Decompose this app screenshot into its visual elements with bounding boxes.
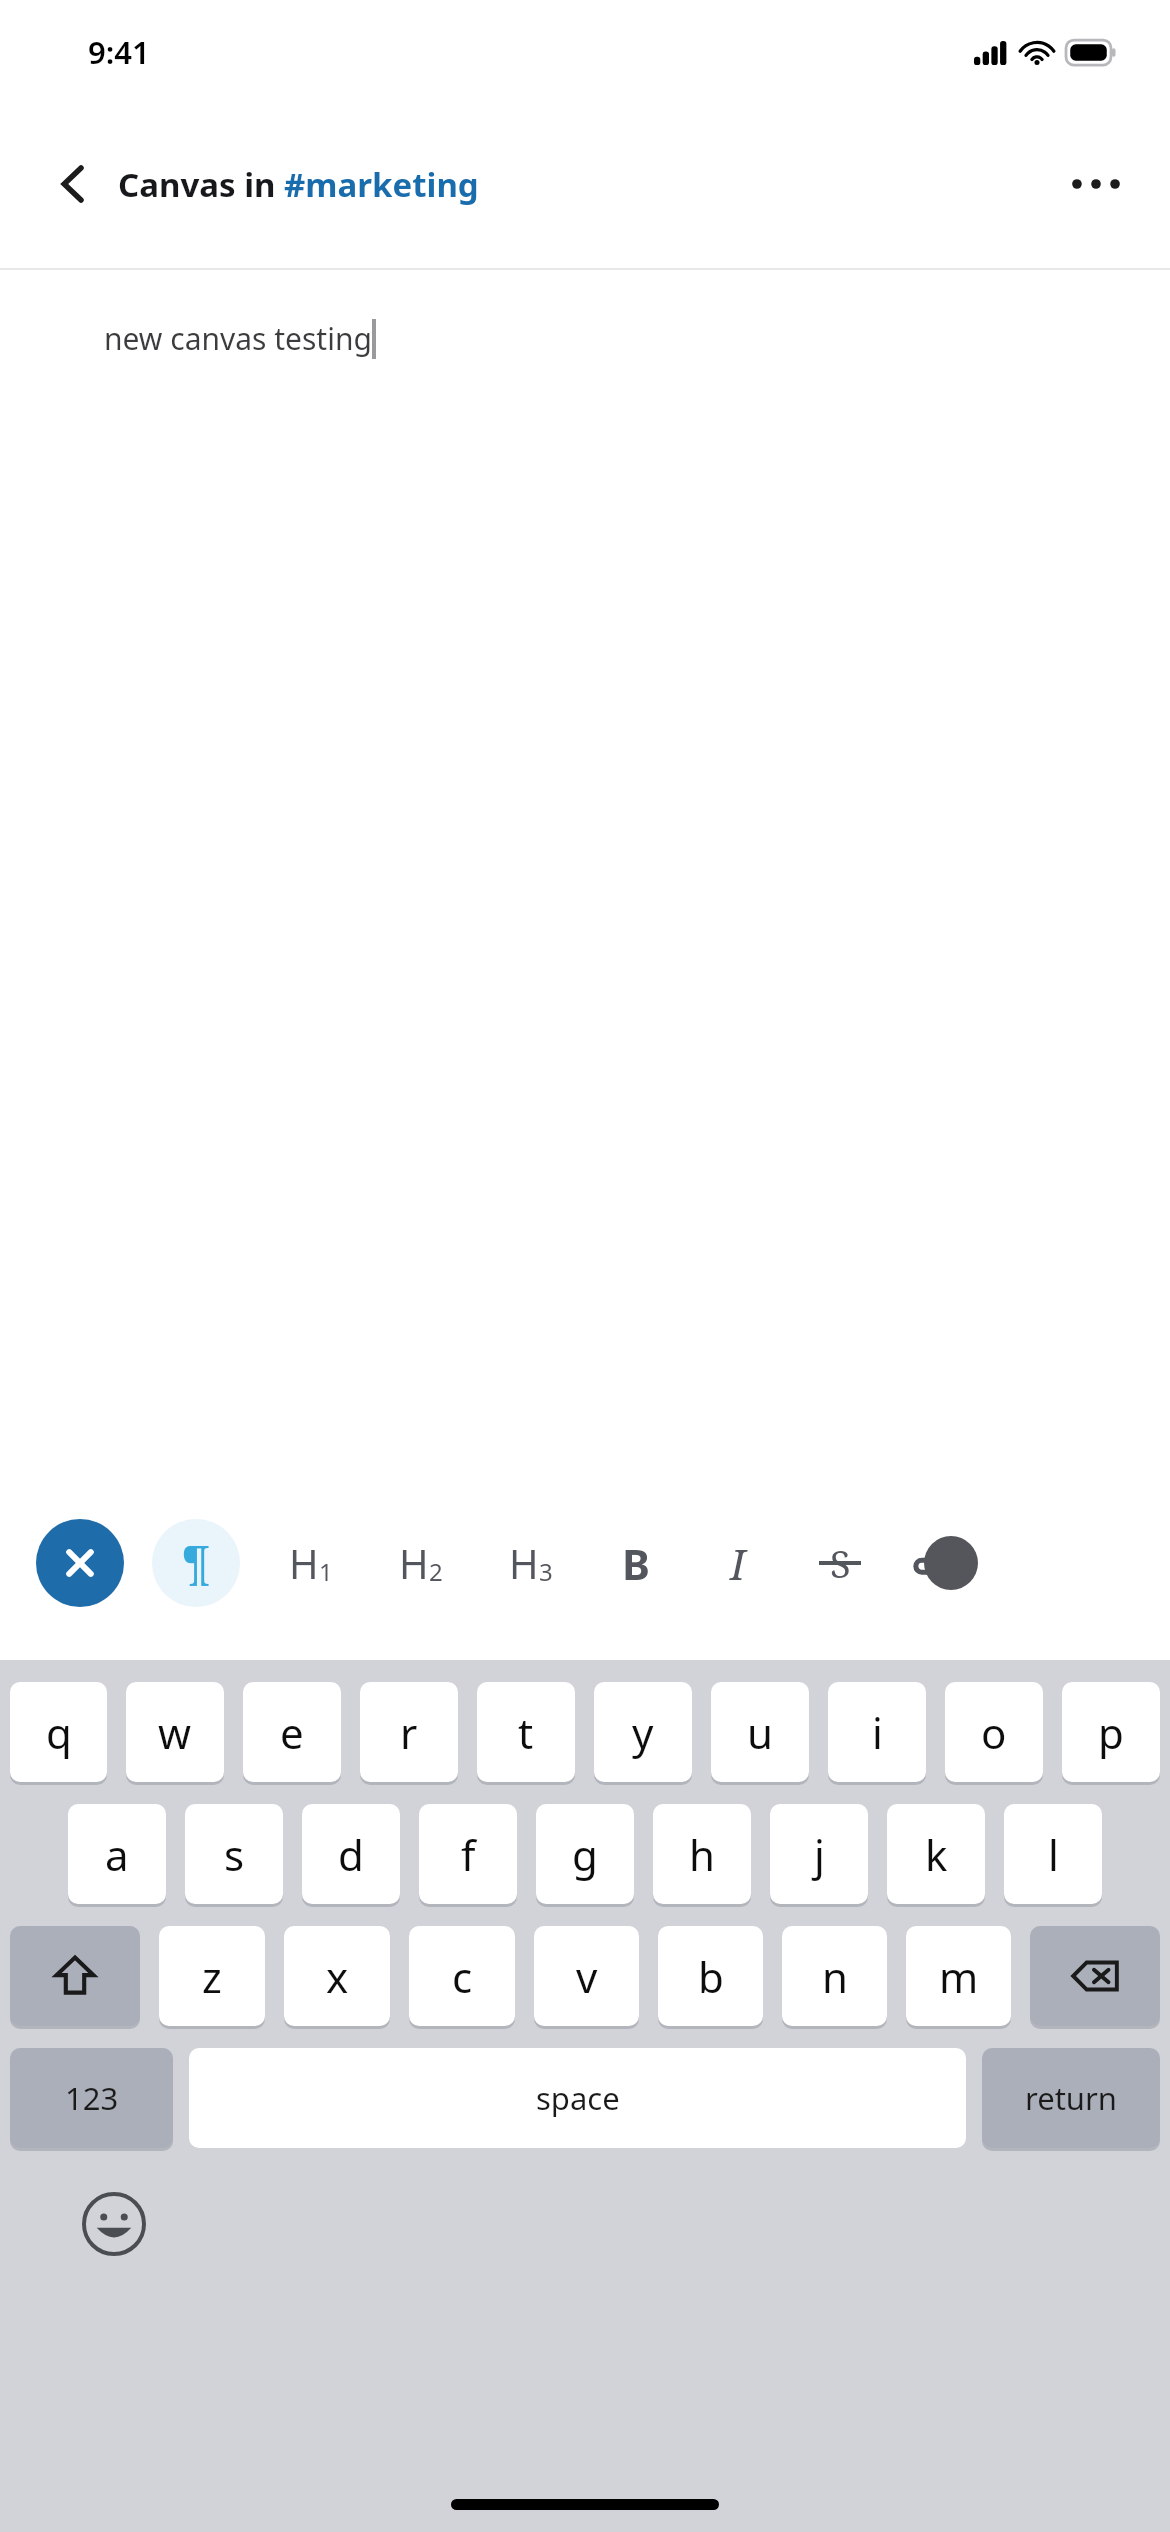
button[interactable]: t [477,1682,575,1782]
staticText: k [925,1826,948,1883]
button[interactable]: g [536,1804,634,1904]
staticText: H [399,1536,429,1590]
staticText: Canvas in #marketing [118,162,479,207]
staticText: x [326,1948,349,2005]
button[interactable]: f [419,1804,517,1904]
button[interactable]: Strikethrough [804,1527,876,1599]
staticText: I [730,1535,746,1592]
staticText: S [830,1537,851,1589]
staticText: j [814,1826,825,1883]
button[interactable]: Insert link [902,1528,972,1598]
button[interactable]: a [68,1804,166,1904]
staticText: e [280,1704,304,1761]
staticText: 123 [65,2077,119,2119]
staticText: r [400,1704,418,1761]
button[interactable]: y [594,1682,692,1782]
staticText: 2 [429,1555,443,1588]
staticText: 1 [319,1555,333,1588]
button[interactable]: l [1004,1804,1102,1904]
staticText: ¶ [182,1532,211,1595]
staticText: i [872,1704,883,1761]
button[interactable]: k [887,1804,985,1904]
staticText: f [461,1826,476,1883]
staticText: z [202,1948,222,2005]
button[interactable]: m [906,1926,1011,2026]
button[interactable]: q [10,1682,107,1782]
button[interactable]: Backspace [1030,1926,1160,2026]
button[interactable]: u [711,1682,809,1782]
button[interactable]: z [159,1926,265,2026]
button[interactable]: d [302,1804,400,1904]
staticText: w [158,1704,192,1761]
staticText: return [1025,2077,1117,2119]
button[interactable]: b [658,1926,763,2026]
staticText: d [338,1826,364,1883]
button[interactable]: Numbers [10,2048,173,2148]
staticText: s [224,1826,245,1883]
staticText: g [572,1826,598,1883]
button[interactable]: Return [982,2048,1160,2148]
button[interactable]: h [653,1804,751,1904]
staticText: space [536,2077,620,2119]
button[interactable]: Paragraph style [152,1519,240,1607]
button[interactable]: w [126,1682,224,1782]
staticText: n [822,1948,848,2005]
button[interactable]: j [770,1804,868,1904]
staticText: t [518,1704,534,1761]
staticText: y [632,1704,654,1761]
button[interactable]: Close formatting [36,1519,124,1607]
staticText: p [1098,1704,1124,1761]
button[interactable]: Heading 2 [382,1524,460,1602]
button[interactable]: i [828,1682,926,1782]
button[interactable]: More options [1052,140,1140,228]
button[interactable]: Heading 3 [492,1524,570,1602]
staticText: H [509,1536,539,1590]
staticText: h [689,1826,715,1883]
staticText: 3 [539,1555,553,1588]
button[interactable]: p [1062,1682,1160,1782]
staticText: l [1048,1826,1059,1883]
button[interactable]: c [409,1926,515,2026]
button[interactable]: Emoji [78,2188,150,2260]
button[interactable]: v [534,1926,639,2026]
button[interactable]: Heading 1 [272,1524,350,1602]
staticText: u [747,1704,773,1761]
staticText: c [452,1948,473,2005]
staticText: v [576,1948,598,2005]
staticText: o [981,1704,1007,1761]
staticText: 9:41 [88,31,150,73]
button[interactable]: Shift [10,1926,140,2026]
button[interactable]: Back [34,145,112,223]
button[interactable]: new canvas testing [0,270,1170,1466]
staticText: a [105,1826,129,1883]
staticText: b [698,1948,724,2005]
staticText: q [46,1704,72,1761]
button[interactable]: o [945,1682,1043,1782]
button[interactable]: x [284,1926,390,2026]
button[interactable]: s [185,1804,283,1904]
button[interactable]: space [189,2048,966,2148]
button[interactable]: Bold [600,1527,672,1599]
staticText: m [939,1948,979,2005]
button[interactable]: Italic [702,1527,774,1599]
staticText: H [289,1536,319,1590]
button[interactable]: r [360,1682,458,1782]
button[interactable]: n [782,1926,887,2026]
staticText: new canvas testing [104,318,372,359]
button[interactable]: e [243,1682,341,1782]
staticText: B [622,1535,650,1592]
